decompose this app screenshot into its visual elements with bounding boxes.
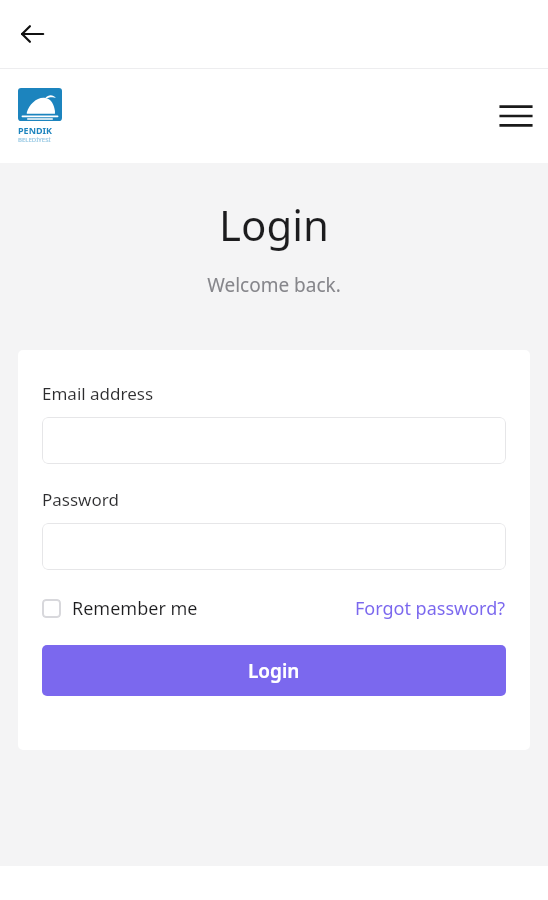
staticText: Forgot password? [355, 596, 506, 621]
button[interactable]: Text input [42, 417, 506, 464]
staticText: Remember me [72, 596, 198, 621]
staticText: BELEDİYESİ [18, 136, 51, 144]
staticText: Email address [42, 382, 154, 405]
button[interactable]: Remember me [42, 594, 198, 623]
button[interactable]: Pendik logo [18, 88, 62, 144]
staticText: Password [42, 488, 119, 511]
button[interactable]: Text input [42, 523, 506, 570]
staticText: Welcome back. [0, 272, 548, 298]
button[interactable]: Login [42, 645, 506, 696]
staticText: Login [248, 658, 300, 684]
button[interactable]: Menu [492, 92, 540, 140]
button[interactable]: Back [12, 14, 52, 54]
staticText: Login [0, 196, 548, 253]
staticText: PENDIK [18, 124, 53, 136]
button[interactable]: Forgot password? [355, 594, 506, 623]
